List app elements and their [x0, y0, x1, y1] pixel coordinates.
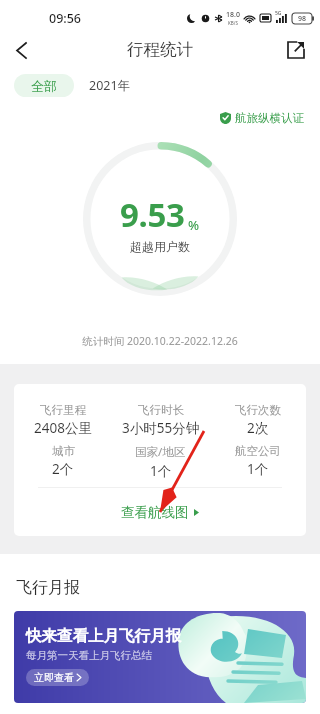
staticText: KB/S — [228, 20, 238, 26]
staticText: 查看航线图 — [121, 504, 189, 521]
staticText: 09:56 — [49, 10, 82, 27]
staticText: 每月第一天看上月飞行总结 — [26, 649, 152, 662]
staticText: 航空公司 — [235, 444, 281, 458]
staticText: 统计时间 2020.10.22-2022.12.26 — [0, 334, 320, 348]
button[interactable]: Share — [280, 34, 312, 66]
button[interactable]: 快来查看上月飞行月报 — [14, 611, 306, 703]
staticText: 98 — [298, 14, 307, 24]
button[interactable]: 查看航线图 — [14, 488, 306, 536]
staticText: 快来查看上月飞行月报 — [26, 626, 181, 646]
staticText: 城市 — [52, 444, 75, 458]
button[interactable]: 全部 — [14, 74, 74, 97]
staticText: 2个 — [52, 460, 74, 478]
staticText: 全部 — [31, 78, 57, 94]
staticText: 1个 — [247, 460, 269, 478]
button[interactable]: 2021年 — [74, 74, 146, 97]
staticText: 立即查看 — [34, 671, 74, 684]
staticText: 超越用户数 — [130, 239, 190, 254]
staticText: 飞行时长 — [138, 403, 184, 417]
staticText: 飞行次数 — [235, 403, 281, 417]
staticText: 9.53 — [120, 192, 185, 237]
staticText: 2408公里 — [34, 419, 92, 437]
staticText: 飞行月报 — [16, 578, 80, 598]
staticText: 1个 — [150, 462, 172, 480]
staticText: 2次 — [247, 419, 269, 437]
staticText: 飞行里程 — [40, 403, 86, 417]
staticText: 行程统计 — [127, 39, 193, 60]
button[interactable]: 立即查看 — [26, 669, 89, 686]
staticText: 18.0 — [226, 10, 240, 20]
staticText: 5G — [275, 10, 282, 17]
button[interactable]: Back — [4, 33, 38, 67]
staticText: 3小时55分钟 — [122, 419, 200, 437]
staticText: 国家/地区 — [135, 444, 186, 460]
staticText: % — [188, 216, 200, 234]
staticText: 航旅纵横认证 — [235, 111, 304, 125]
staticText: 2021年 — [89, 77, 131, 94]
